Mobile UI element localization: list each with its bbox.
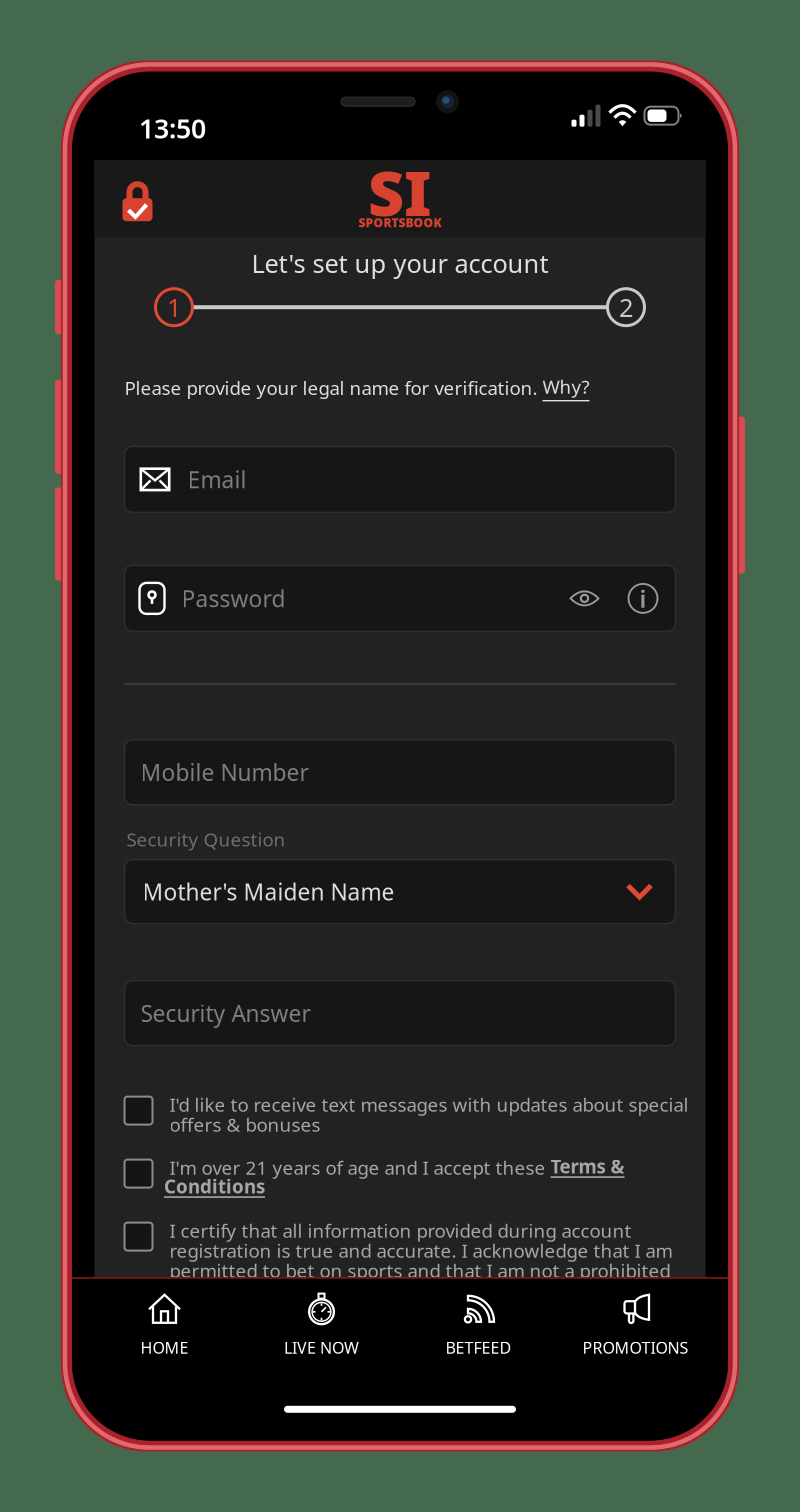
- button[interactable]: I'm over 21 years of age and I accept th…: [124, 1158, 675, 1198]
- staticText: 1: [167, 290, 181, 324]
- staticText: Security Question: [126, 827, 285, 852]
- staticText: SI: [368, 150, 432, 233]
- staticText: i: [639, 582, 646, 614]
- button[interactable]: Account secure: [94, 160, 167, 237]
- button[interactable]: Why?: [542, 374, 589, 401]
- button[interactable]: HOME: [86, 1289, 243, 1362]
- staticText: I'm over 21 years of age and I accept th…: [169, 1155, 550, 1180]
- button[interactable]: BETFEED: [400, 1289, 557, 1362]
- staticText: PROMOTIONS: [582, 1337, 688, 1358]
- staticText: 13:50: [139, 110, 206, 146]
- staticText: LIVE NOW: [284, 1337, 359, 1358]
- staticText: HOME: [140, 1337, 188, 1358]
- staticText: offers & bonuses: [169, 1112, 320, 1137]
- button[interactable]: Show password: [563, 588, 605, 609]
- staticText: BETFEED: [445, 1337, 511, 1358]
- staticText: permitted to bet on sports and that I am…: [169, 1258, 670, 1283]
- staticText: I certify that all information provided …: [169, 1218, 631, 1243]
- staticText: Conditions: [164, 1174, 265, 1199]
- button[interactable]: I certify that all information provided …: [124, 1221, 675, 1281]
- button[interactable]: PROMOTIONS: [557, 1289, 714, 1362]
- button[interactable]: Password info: [605, 583, 675, 614]
- staticText: Terms &: [550, 1154, 624, 1179]
- staticText: registration is true and accurate. I ack…: [169, 1238, 672, 1263]
- staticText: Password: [181, 583, 285, 613]
- staticText: I'd like to receive text messages with u…: [169, 1092, 688, 1117]
- staticText: Mother's Maiden Name: [142, 876, 394, 907]
- staticText: Why?: [542, 374, 589, 399]
- button[interactable]: Mother's Maiden Name: [124, 860, 675, 924]
- staticText: Security Answer: [140, 998, 310, 1028]
- staticText: SPORTSBOOK: [358, 215, 441, 231]
- button[interactable]: LIVE NOW: [243, 1289, 400, 1362]
- staticText: 2: [619, 290, 633, 324]
- button[interactable]: I'd like to receive text messages with u…: [124, 1095, 675, 1135]
- staticText: Let's set up your account: [251, 246, 548, 280]
- staticText: Please provide your legal name for verif…: [124, 375, 542, 400]
- staticText: Mobile Number: [140, 757, 308, 787]
- staticText: Email: [187, 464, 246, 494]
